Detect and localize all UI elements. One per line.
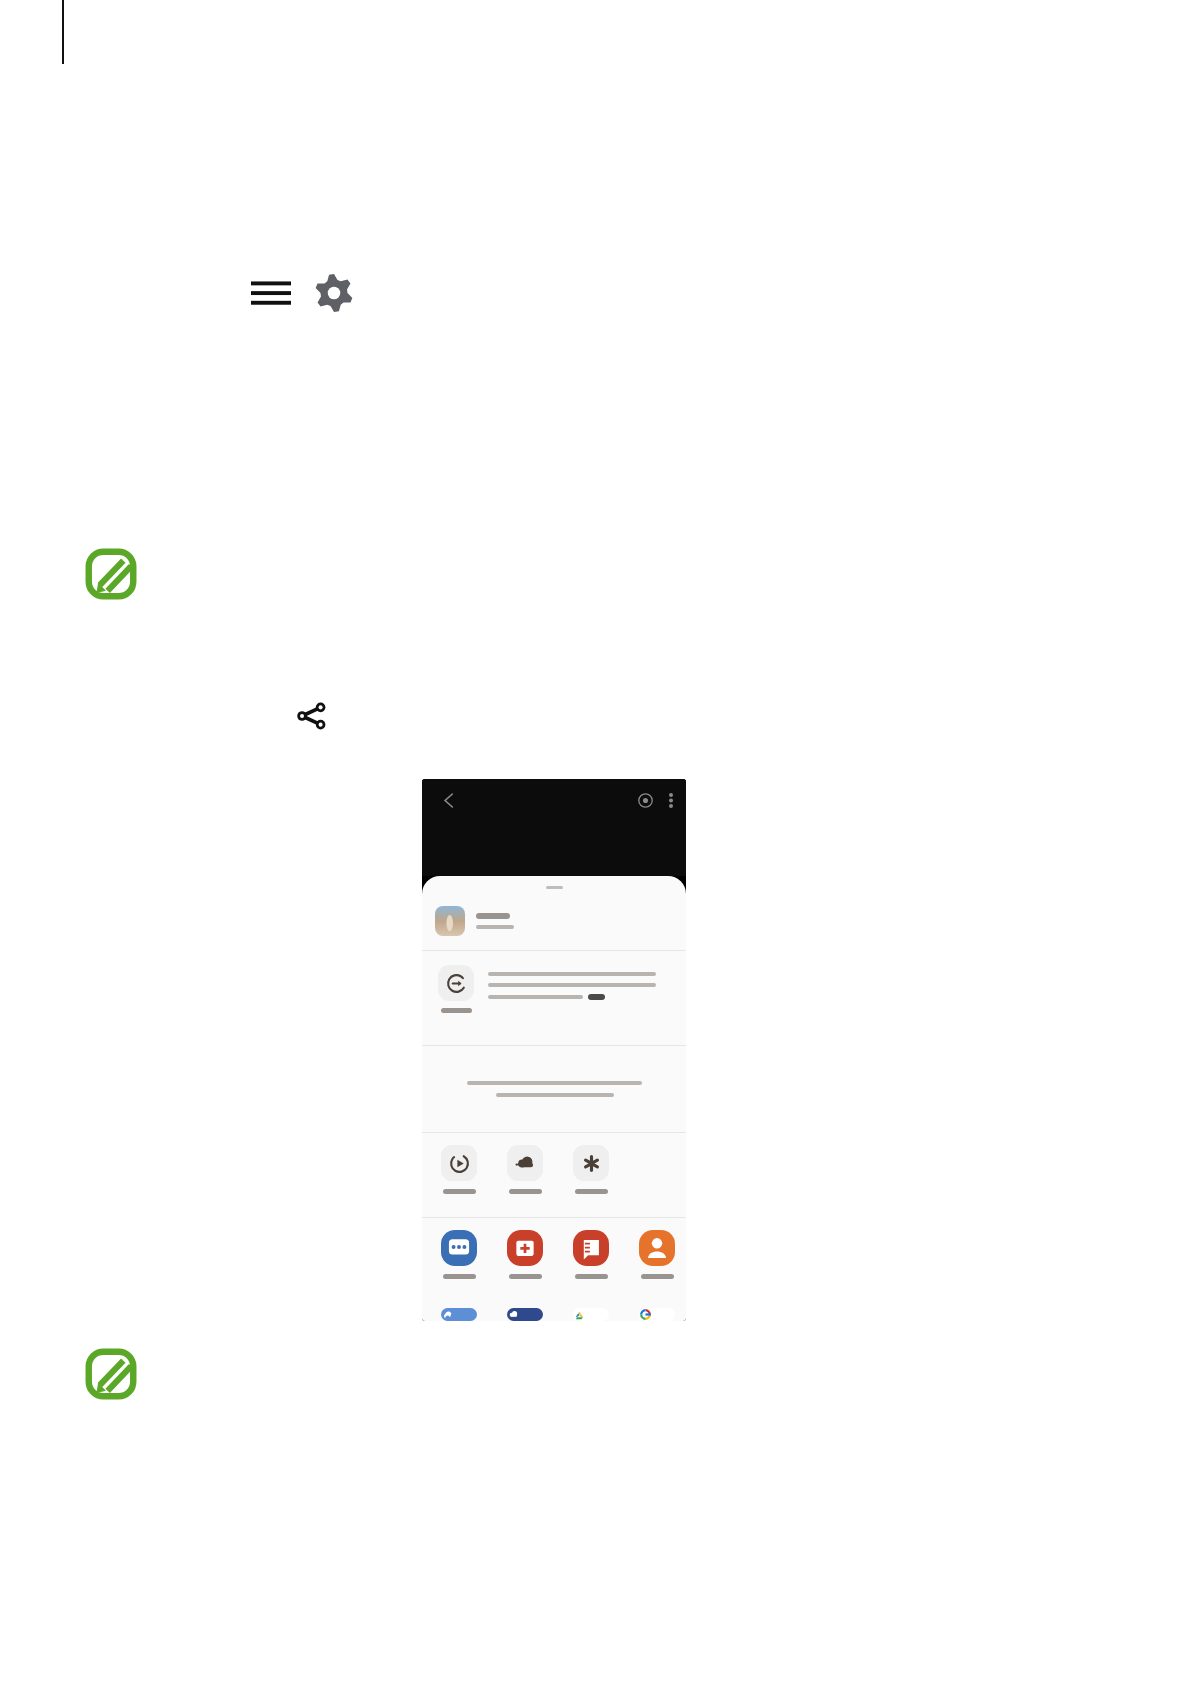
button[interactable]: Share (290, 695, 332, 737)
button[interactable]: Link Sharing (504, 1145, 546, 1194)
button[interactable]: App (504, 1230, 546, 1279)
button[interactable]: App (636, 1308, 678, 1321)
button[interactable]: More options (658, 787, 684, 813)
button[interactable]: App (636, 1230, 678, 1279)
button[interactable] (422, 951, 686, 1045)
button[interactable]: Settings (313, 272, 355, 314)
button[interactable]: App (438, 1308, 480, 1321)
button[interactable]: App (504, 1308, 546, 1321)
button[interactable]: App (570, 1230, 612, 1279)
button[interactable]: Samsung Notes (82, 1345, 140, 1403)
button[interactable] (422, 892, 686, 950)
button[interactable]: Menu (250, 274, 292, 312)
button[interactable]: App (438, 1230, 480, 1279)
button[interactable]: Samsung Notes (82, 545, 140, 603)
button[interactable]: Preview (632, 787, 658, 813)
button[interactable]: Shared album (570, 1145, 612, 1194)
button[interactable]: App (570, 1308, 612, 1321)
button[interactable]: Back (436, 787, 462, 813)
button[interactable]: Smart View (438, 1145, 480, 1194)
